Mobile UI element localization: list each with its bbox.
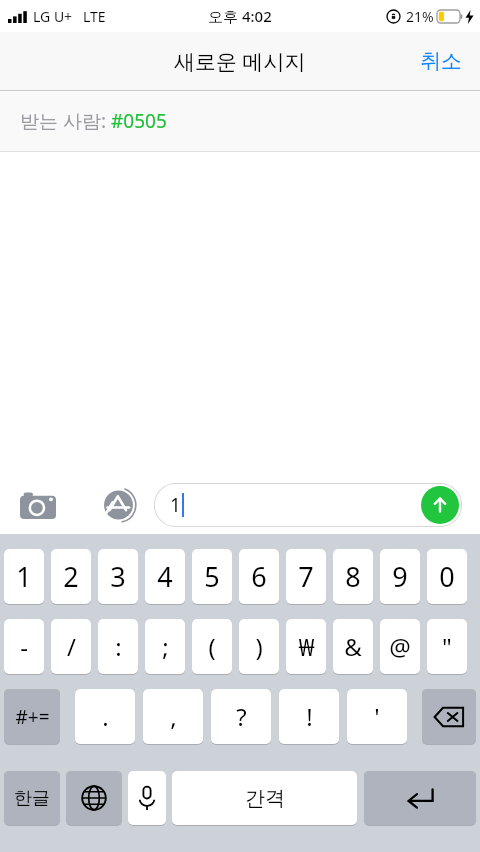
button[interactable]: ( xyxy=(192,618,232,674)
staticText: ! xyxy=(306,700,313,733)
staticText: ) xyxy=(255,630,263,663)
button[interactable]: 1 xyxy=(4,548,44,604)
button[interactable]: : xyxy=(98,618,138,674)
staticText: ' xyxy=(374,700,380,733)
staticText: 간격 xyxy=(245,786,285,811)
staticText: & xyxy=(344,630,362,663)
staticText: 오후 4:02 xyxy=(208,6,272,26)
button[interactable]: Delete xyxy=(422,688,476,744)
staticText: 새로운 메시지 xyxy=(174,47,306,76)
staticText: , xyxy=(170,700,177,733)
button[interactable]: 4 xyxy=(145,548,185,604)
button[interactable]: Voice input xyxy=(128,770,166,825)
staticText: #+= xyxy=(15,704,50,730)
button[interactable]: 8 xyxy=(333,548,373,604)
button[interactable]: Change keyboard xyxy=(66,770,122,825)
staticText: 취소 xyxy=(420,48,462,74)
staticText: . xyxy=(102,700,109,733)
button[interactable]: 7 xyxy=(286,548,326,604)
staticText: ? xyxy=(236,700,247,733)
staticText: / xyxy=(67,630,76,663)
button[interactable]: Camera xyxy=(18,485,58,525)
staticText: " xyxy=(442,630,452,663)
staticText: 받는 사람: xyxy=(20,108,111,134)
staticText: @ xyxy=(389,630,411,663)
staticText: 3 xyxy=(110,558,126,595)
button[interactable]: , xyxy=(143,688,203,744)
button[interactable]: 받는 사람: xyxy=(0,91,480,151)
button[interactable]: #+= xyxy=(4,688,60,744)
button[interactable]: 9 xyxy=(380,548,420,604)
staticText: 9 xyxy=(392,558,408,595)
staticText: 2 xyxy=(63,558,79,595)
staticText: LG U+ xyxy=(33,7,73,26)
staticText: 4 xyxy=(157,558,173,595)
button[interactable]: 한글 xyxy=(4,770,60,825)
staticText: 1 xyxy=(170,492,181,518)
button[interactable]: ; xyxy=(145,618,185,674)
staticText: 21% xyxy=(406,7,434,26)
button[interactable]: App Store xyxy=(100,485,140,525)
button[interactable]: 2 xyxy=(51,548,91,604)
button[interactable]: 5 xyxy=(192,548,232,604)
button[interactable]: / xyxy=(51,618,91,674)
staticText: 한글 xyxy=(14,787,50,810)
staticText: 1 xyxy=(16,558,32,595)
staticText: 7 xyxy=(298,558,314,595)
button[interactable]: 3 xyxy=(98,548,138,604)
staticText: - xyxy=(20,630,28,663)
staticText: ; xyxy=(162,630,169,663)
button[interactable]: @ xyxy=(380,618,420,674)
button[interactable]: . xyxy=(75,688,135,744)
staticText: : xyxy=(115,630,122,663)
button[interactable]: Send xyxy=(421,486,459,524)
button[interactable]: & xyxy=(333,618,373,674)
button[interactable]: ? xyxy=(211,688,271,744)
staticText: 6 xyxy=(251,558,267,595)
button[interactable]: ! xyxy=(279,688,339,744)
button[interactable]: ) xyxy=(239,618,279,674)
staticText: 5 xyxy=(204,558,220,595)
button[interactable]: 0 xyxy=(427,548,467,604)
button[interactable]: Return xyxy=(364,770,476,825)
button[interactable]: " xyxy=(427,618,467,674)
staticText: ₩ xyxy=(298,630,315,663)
staticText: ( xyxy=(208,630,216,663)
button[interactable]: ₩ xyxy=(286,618,326,674)
button[interactable]: 간격 xyxy=(172,770,357,825)
staticText: 0 xyxy=(439,558,455,595)
staticText: 8 xyxy=(345,558,361,595)
button[interactable]: 1 xyxy=(154,483,462,527)
button[interactable]: ' xyxy=(347,688,407,744)
button[interactable]: 취소 xyxy=(414,44,468,78)
button[interactable]: - xyxy=(4,618,44,674)
staticText: LTE xyxy=(83,7,106,26)
staticText: #0505 xyxy=(111,108,167,134)
button[interactable]: 6 xyxy=(239,548,279,604)
